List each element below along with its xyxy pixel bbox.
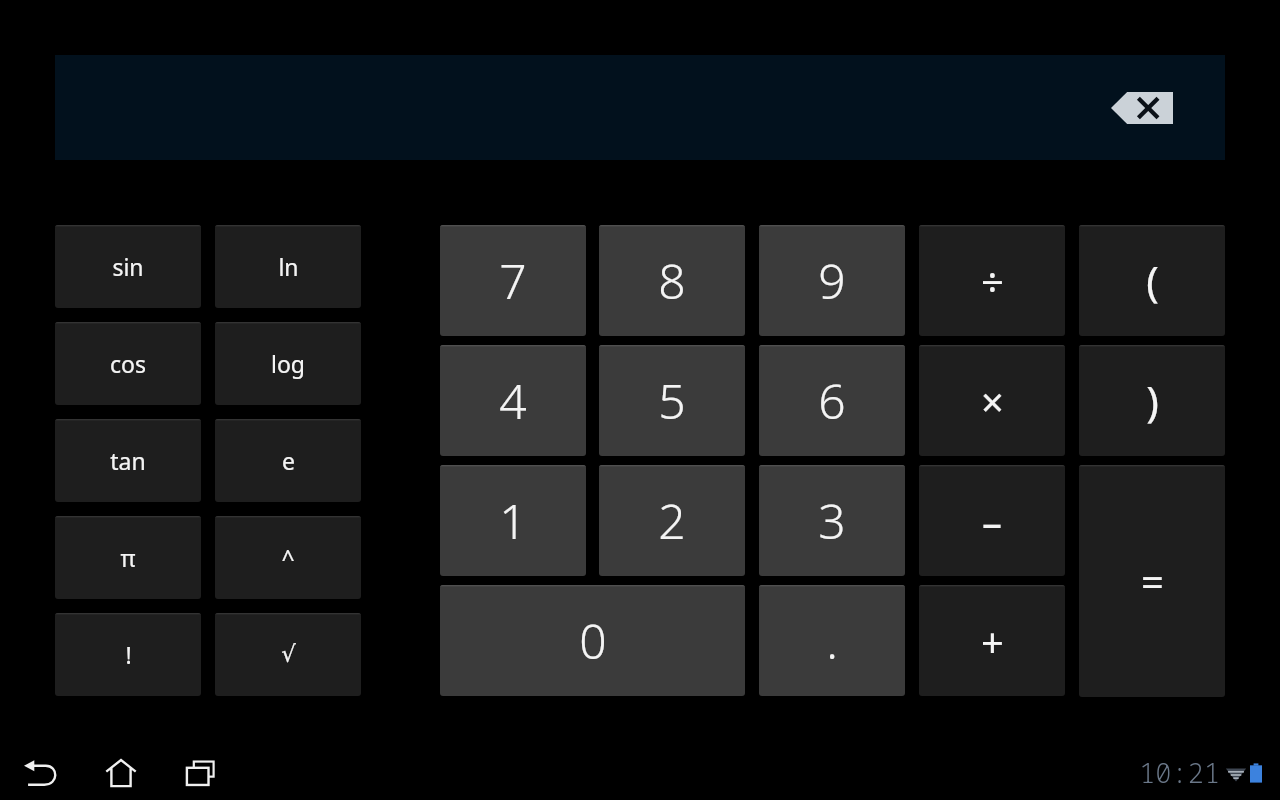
- staticText: sin: [112, 251, 144, 282]
- button[interactable]: .: [759, 585, 905, 696]
- staticText: e: [282, 445, 295, 476]
- button[interactable]: Delete: [55, 55, 1225, 160]
- staticText: ln: [278, 251, 299, 282]
- staticText: –: [982, 494, 1002, 548]
- staticText: √: [281, 641, 296, 668]
- staticText: .: [826, 608, 838, 673]
- button[interactable]: tan: [55, 419, 201, 502]
- staticText: π: [120, 542, 136, 573]
- button[interactable]: 6: [759, 345, 905, 456]
- staticText: 2: [658, 488, 686, 553]
- staticText: 3: [818, 488, 846, 553]
- button[interactable]: Back: [14, 756, 68, 790]
- staticText: ^: [281, 542, 295, 573]
- staticText: ): [1146, 372, 1159, 429]
- button[interactable]: Subtract: [919, 465, 1065, 576]
- button[interactable]: Home: [96, 756, 146, 790]
- button[interactable]: 8: [599, 225, 745, 336]
- button[interactable]: e: [215, 419, 361, 502]
- staticText: cos: [110, 348, 146, 379]
- staticText: 9: [818, 248, 846, 313]
- button[interactable]: Multiply: [919, 345, 1065, 456]
- staticText: (: [1146, 252, 1159, 309]
- staticText: log: [271, 348, 305, 379]
- staticText: 5: [658, 368, 686, 433]
- button[interactable]: Equals: [1079, 465, 1225, 697]
- button[interactable]: ln: [215, 225, 361, 308]
- staticText: 1: [499, 488, 527, 553]
- button[interactable]: log: [215, 322, 361, 405]
- staticText: 6: [818, 368, 846, 433]
- staticText: =: [1141, 554, 1164, 608]
- staticText: ×: [981, 374, 1004, 428]
- button[interactable]: Divide: [919, 225, 1065, 336]
- staticText: ÷: [981, 254, 1004, 308]
- staticText: 0: [579, 608, 607, 673]
- staticText: tan: [110, 445, 146, 476]
- button[interactable]: 1: [440, 465, 586, 576]
- button[interactable]: 3: [759, 465, 905, 576]
- staticText: 10:21: [1139, 754, 1220, 791]
- button[interactable]: Delete: [1111, 92, 1173, 124]
- button[interactable]: π: [55, 516, 201, 599]
- button[interactable]: !: [55, 613, 201, 696]
- button[interactable]: 2: [599, 465, 745, 576]
- button[interactable]: √: [215, 613, 361, 696]
- staticText: 7: [499, 248, 527, 313]
- staticText: !: [125, 639, 132, 670]
- button[interactable]: 4: [440, 345, 586, 456]
- button[interactable]: sin: [55, 225, 201, 308]
- button[interactable]: 7: [440, 225, 586, 336]
- button[interactable]: ): [1079, 345, 1225, 456]
- button[interactable]: Recent apps: [176, 756, 226, 790]
- button[interactable]: 5: [599, 345, 745, 456]
- staticText: 4: [499, 368, 527, 433]
- button[interactable]: 0: [440, 585, 745, 696]
- button[interactable]: (: [1079, 225, 1225, 336]
- button[interactable]: cos: [55, 322, 201, 405]
- staticText: 8: [658, 248, 686, 313]
- staticText: +: [981, 614, 1004, 668]
- button[interactable]: Add: [919, 585, 1065, 696]
- button[interactable]: ^: [215, 516, 361, 599]
- button[interactable]: 9: [759, 225, 905, 336]
